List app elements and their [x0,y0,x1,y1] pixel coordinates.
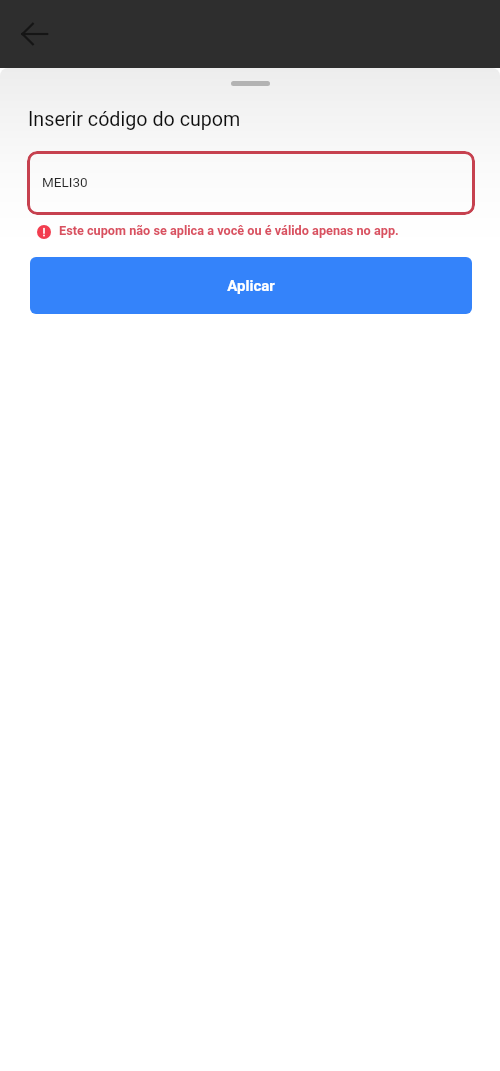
staticText: MELI30 [42,174,88,190]
staticText: Este cupom não se aplica a você ou é vál… [59,223,399,238]
button[interactable]: Back [14,13,56,55]
staticText: Aplicar [227,277,275,295]
other: Error [37,225,51,239]
button[interactable]: MELI30 [27,151,475,215]
staticText: Inserir código do cupom [28,108,241,131]
button[interactable]: Aplicar [30,257,472,314]
